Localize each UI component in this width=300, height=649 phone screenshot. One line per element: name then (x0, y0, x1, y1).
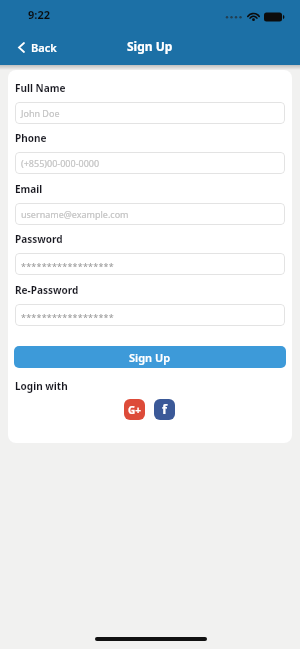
staticText: ****************** (21, 311, 114, 323)
staticText: Back (31, 40, 57, 55)
staticText: John Doe (21, 107, 60, 119)
button[interactable]: f (154, 399, 175, 420)
staticText: Login with (15, 379, 68, 393)
staticText: 9:22 (28, 7, 50, 22)
button[interactable]: Back (18, 39, 57, 55)
button[interactable]: ****************** (15, 253, 285, 275)
staticText: Sign Up (129, 350, 171, 365)
button[interactable]: G+ (124, 399, 145, 420)
staticText: username@example.com (21, 208, 129, 220)
staticText: Phone (15, 131, 47, 145)
button[interactable]: Sign Up (14, 346, 286, 368)
button[interactable]: (+855)00-000-0000 (15, 152, 285, 174)
staticText: ****************** (21, 260, 114, 272)
staticText: Full Name (15, 81, 66, 95)
staticText: f (162, 400, 168, 418)
button[interactable]: username@example.com (15, 203, 285, 225)
staticText: G+ (128, 403, 141, 417)
staticText: Email (15, 182, 43, 196)
staticText: Sign Up (127, 38, 173, 54)
staticText: (+855)00-000-0000 (21, 157, 100, 169)
staticText: Password (15, 232, 63, 246)
staticText: Re-Password (15, 283, 79, 297)
button[interactable]: John Doe (15, 102, 285, 124)
button[interactable]: ****************** (15, 304, 285, 326)
